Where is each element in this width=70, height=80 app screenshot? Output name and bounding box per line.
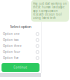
- button[interactable]: Option one: [0, 31, 41, 37]
- staticText: Hey, just start working on these human l…: [33, 2, 67, 20]
- staticText: Select option: [10, 24, 31, 29]
- staticText: Continue: [13, 66, 27, 69]
- button[interactable]: Option three: [0, 43, 41, 49]
- staticText: Option one: [3, 32, 20, 36]
- button[interactable]: Continue: [1, 63, 39, 72]
- button[interactable]: Option two: [0, 37, 41, 43]
- staticText: Option two: [3, 38, 19, 42]
- button[interactable]: Option five: [0, 55, 41, 61]
- staticText: Option five: [3, 56, 19, 60]
- button[interactable]: Option four: [0, 49, 41, 55]
- staticText: Option three: [3, 44, 22, 48]
- staticText: Option four: [3, 50, 20, 54]
